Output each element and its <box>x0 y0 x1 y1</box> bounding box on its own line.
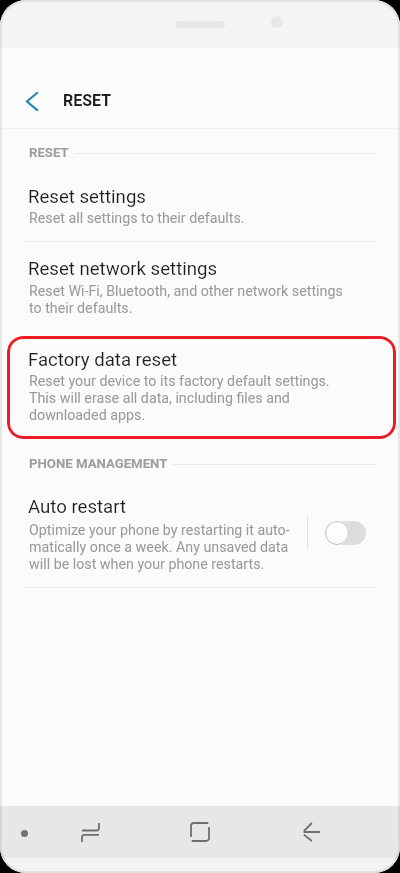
staticText: Reset network settings <box>28 258 218 280</box>
staticText: PHONE MANAGEMENT <box>29 456 168 471</box>
button[interactable] <box>0 480 300 587</box>
button[interactable]: Auto restart toggle <box>325 521 366 545</box>
staticText: RESET <box>29 145 69 160</box>
staticText: Reset all settings to their defaults. <box>29 210 245 227</box>
staticText: RESET <box>63 91 112 110</box>
staticText: Optimize your phone by restarting it aut… <box>29 522 290 573</box>
button[interactable]: Home <box>177 809 223 855</box>
button[interactable]: Recents <box>67 809 113 855</box>
button[interactable]: RESET <box>58 76 118 124</box>
button[interactable] <box>0 170 400 241</box>
button[interactable]: Back <box>14 83 50 119</box>
staticText: Reset your device to its factory default… <box>29 373 330 424</box>
button[interactable] <box>7 336 396 439</box>
button[interactable]: Back <box>288 809 334 855</box>
staticText: Auto restart <box>28 496 127 518</box>
staticText: Reset settings <box>28 186 146 208</box>
staticText: Factory data reset <box>28 349 178 371</box>
staticText: Reset Wi-Fi, Bluetooth, and other networ… <box>29 283 343 317</box>
button[interactable] <box>0 242 400 335</box>
